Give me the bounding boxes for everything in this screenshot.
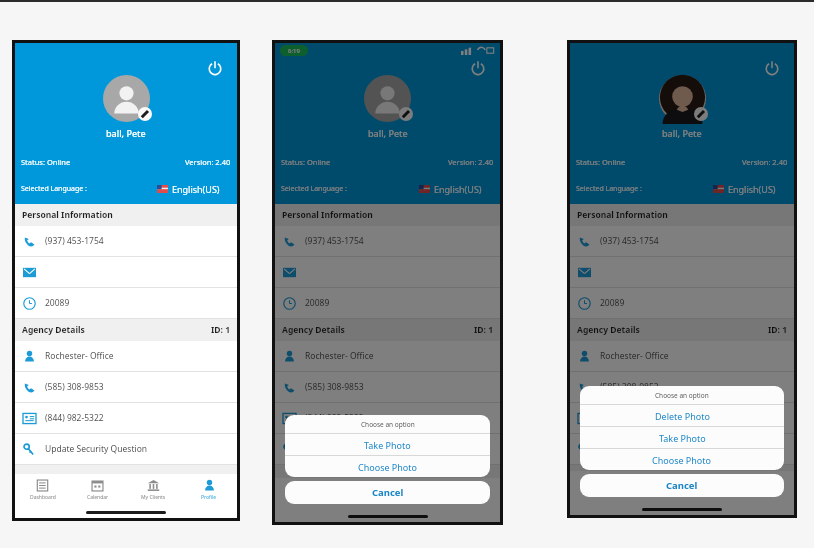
staticText: Personal Information bbox=[282, 209, 373, 221]
staticText: Profile bbox=[464, 498, 480, 505]
button[interactable]: Rochester- Office bbox=[15, 341, 237, 372]
staticText: My Clients bbox=[698, 491, 723, 498]
button[interactable] bbox=[15, 257, 237, 288]
button[interactable]: 20089 bbox=[15, 288, 237, 319]
staticText: Selected Language : bbox=[281, 184, 347, 194]
button[interactable]: (844) 982-5322 bbox=[275, 403, 500, 434]
button[interactable]: Calendar bbox=[332, 478, 388, 510]
button[interactable]: 20089 bbox=[275, 288, 500, 319]
button[interactable] bbox=[364, 75, 411, 122]
button[interactable]: Take Photo bbox=[580, 427, 784, 448]
staticText: ball, Pete bbox=[368, 127, 408, 139]
button[interactable]: (844) 982-5322 bbox=[15, 403, 237, 434]
button[interactable]: My Clients bbox=[682, 471, 738, 503]
staticText: (937) 453-1754 bbox=[600, 235, 659, 247]
staticText: Cancel bbox=[372, 486, 404, 499]
button[interactable]: Selected Language : bbox=[21, 174, 231, 204]
staticText: 20089 bbox=[305, 297, 330, 309]
staticText: Cancel bbox=[666, 479, 698, 492]
staticText: Selected Language : bbox=[576, 184, 642, 194]
button[interactable] bbox=[275, 257, 500, 288]
button[interactable]: (585) 308-9853 bbox=[275, 372, 500, 403]
staticText: (844) 982-5322 bbox=[600, 412, 659, 424]
staticText: Status: Online bbox=[21, 157, 71, 167]
staticText: ID: 1 bbox=[474, 324, 493, 336]
staticText: Agency Details bbox=[577, 324, 640, 336]
button[interactable]: My Clients bbox=[388, 478, 444, 510]
staticText: Take Photo bbox=[659, 432, 706, 444]
button[interactable]: (844) 982-5322 bbox=[570, 403, 794, 434]
staticText: (937) 453-1754 bbox=[45, 235, 104, 247]
button[interactable] bbox=[659, 75, 706, 122]
button[interactable]: Dashboard bbox=[15, 474, 70, 506]
button[interactable]: Take Photo bbox=[285, 434, 490, 455]
staticText: Choose Photo bbox=[652, 454, 712, 466]
staticText: (844) 982-5322 bbox=[45, 412, 104, 424]
staticText: Agency Details bbox=[22, 324, 85, 336]
staticText: Profile bbox=[758, 491, 774, 498]
button[interactable]: Update Security Question bbox=[275, 434, 500, 465]
button[interactable]: Log out bbox=[204, 57, 226, 79]
staticText: Update Security Question bbox=[600, 443, 703, 455]
button[interactable]: Choose Photo bbox=[580, 449, 784, 470]
button[interactable]: (585) 308-9853 bbox=[15, 372, 237, 403]
staticText: My Clients bbox=[141, 494, 166, 501]
staticText: Update Security Question bbox=[45, 443, 148, 455]
staticText: (585) 308-9853 bbox=[45, 381, 104, 393]
button[interactable]: Cancel bbox=[580, 474, 784, 497]
button[interactable]: My Clients bbox=[125, 474, 181, 506]
staticText: Rochester- Office bbox=[305, 350, 374, 362]
staticText: Status: Online bbox=[281, 157, 331, 167]
button[interactable]: Update Security Question bbox=[15, 434, 237, 465]
staticText: Choose an option bbox=[655, 391, 709, 400]
button[interactable]: (937) 453-1754 bbox=[570, 226, 794, 257]
staticText: (585) 308-9853 bbox=[305, 381, 364, 393]
staticText: Dashboard bbox=[585, 491, 611, 498]
staticText: Status: Online bbox=[576, 157, 626, 167]
button[interactable]: Profile bbox=[181, 474, 237, 506]
staticText: Take Photo bbox=[364, 439, 411, 451]
staticText: Calendar bbox=[349, 498, 371, 505]
staticText: Choose Photo bbox=[358, 461, 418, 473]
staticText: Rochester- Office bbox=[600, 350, 669, 362]
staticText: Update Security Question bbox=[305, 443, 408, 455]
staticText: English(US) bbox=[434, 183, 482, 195]
staticText: Personal Information bbox=[577, 209, 668, 221]
button[interactable]: Rochester- Office bbox=[275, 341, 500, 372]
button[interactable]: Choose Photo bbox=[285, 456, 490, 477]
staticText: Rochester- Office bbox=[45, 350, 114, 362]
button[interactable]: Calendar bbox=[70, 474, 125, 506]
button[interactable] bbox=[103, 75, 150, 122]
button[interactable]: (585) 308-9853 bbox=[570, 372, 794, 403]
staticText: (585) 308-9853 bbox=[600, 381, 659, 393]
button[interactable]: Log out bbox=[467, 57, 489, 79]
button[interactable]: Profile bbox=[738, 471, 794, 503]
button[interactable]: (937) 453-1754 bbox=[275, 226, 500, 257]
button[interactable]: Dashboard bbox=[275, 478, 332, 510]
button[interactable]: Rochester- Office bbox=[570, 341, 794, 372]
button[interactable]: 20089 bbox=[570, 288, 794, 319]
staticText: 20089 bbox=[45, 297, 70, 309]
staticText: Dashboard bbox=[291, 498, 317, 505]
button[interactable]: Delete Photo bbox=[580, 405, 784, 426]
staticText: (937) 453-1754 bbox=[305, 235, 364, 247]
button[interactable]: Selected Language : bbox=[281, 174, 494, 204]
staticText: ball, Pete bbox=[106, 127, 146, 139]
staticText: Profile bbox=[201, 494, 217, 501]
staticText: 6:19 bbox=[288, 47, 300, 55]
button[interactable]: (937) 453-1754 bbox=[15, 226, 237, 257]
button[interactable]: Dashboard bbox=[570, 471, 626, 503]
button[interactable]: Calendar bbox=[626, 471, 682, 503]
staticText: Agency Details bbox=[282, 324, 345, 336]
staticText: Version: 2.40 bbox=[185, 157, 231, 167]
button[interactable]: Cancel bbox=[285, 481, 490, 504]
staticText: Dashboard bbox=[30, 494, 56, 501]
button[interactable]: Log out bbox=[761, 57, 783, 79]
button[interactable]: Selected Language : bbox=[576, 174, 788, 204]
button[interactable]: Profile bbox=[444, 478, 500, 510]
staticText: Personal Information bbox=[22, 209, 113, 221]
button[interactable]: Update Security Question bbox=[570, 434, 794, 465]
button[interactable] bbox=[570, 257, 794, 288]
staticText: (844) 982-5322 bbox=[305, 412, 364, 424]
staticText: Version: 2.40 bbox=[742, 157, 788, 167]
